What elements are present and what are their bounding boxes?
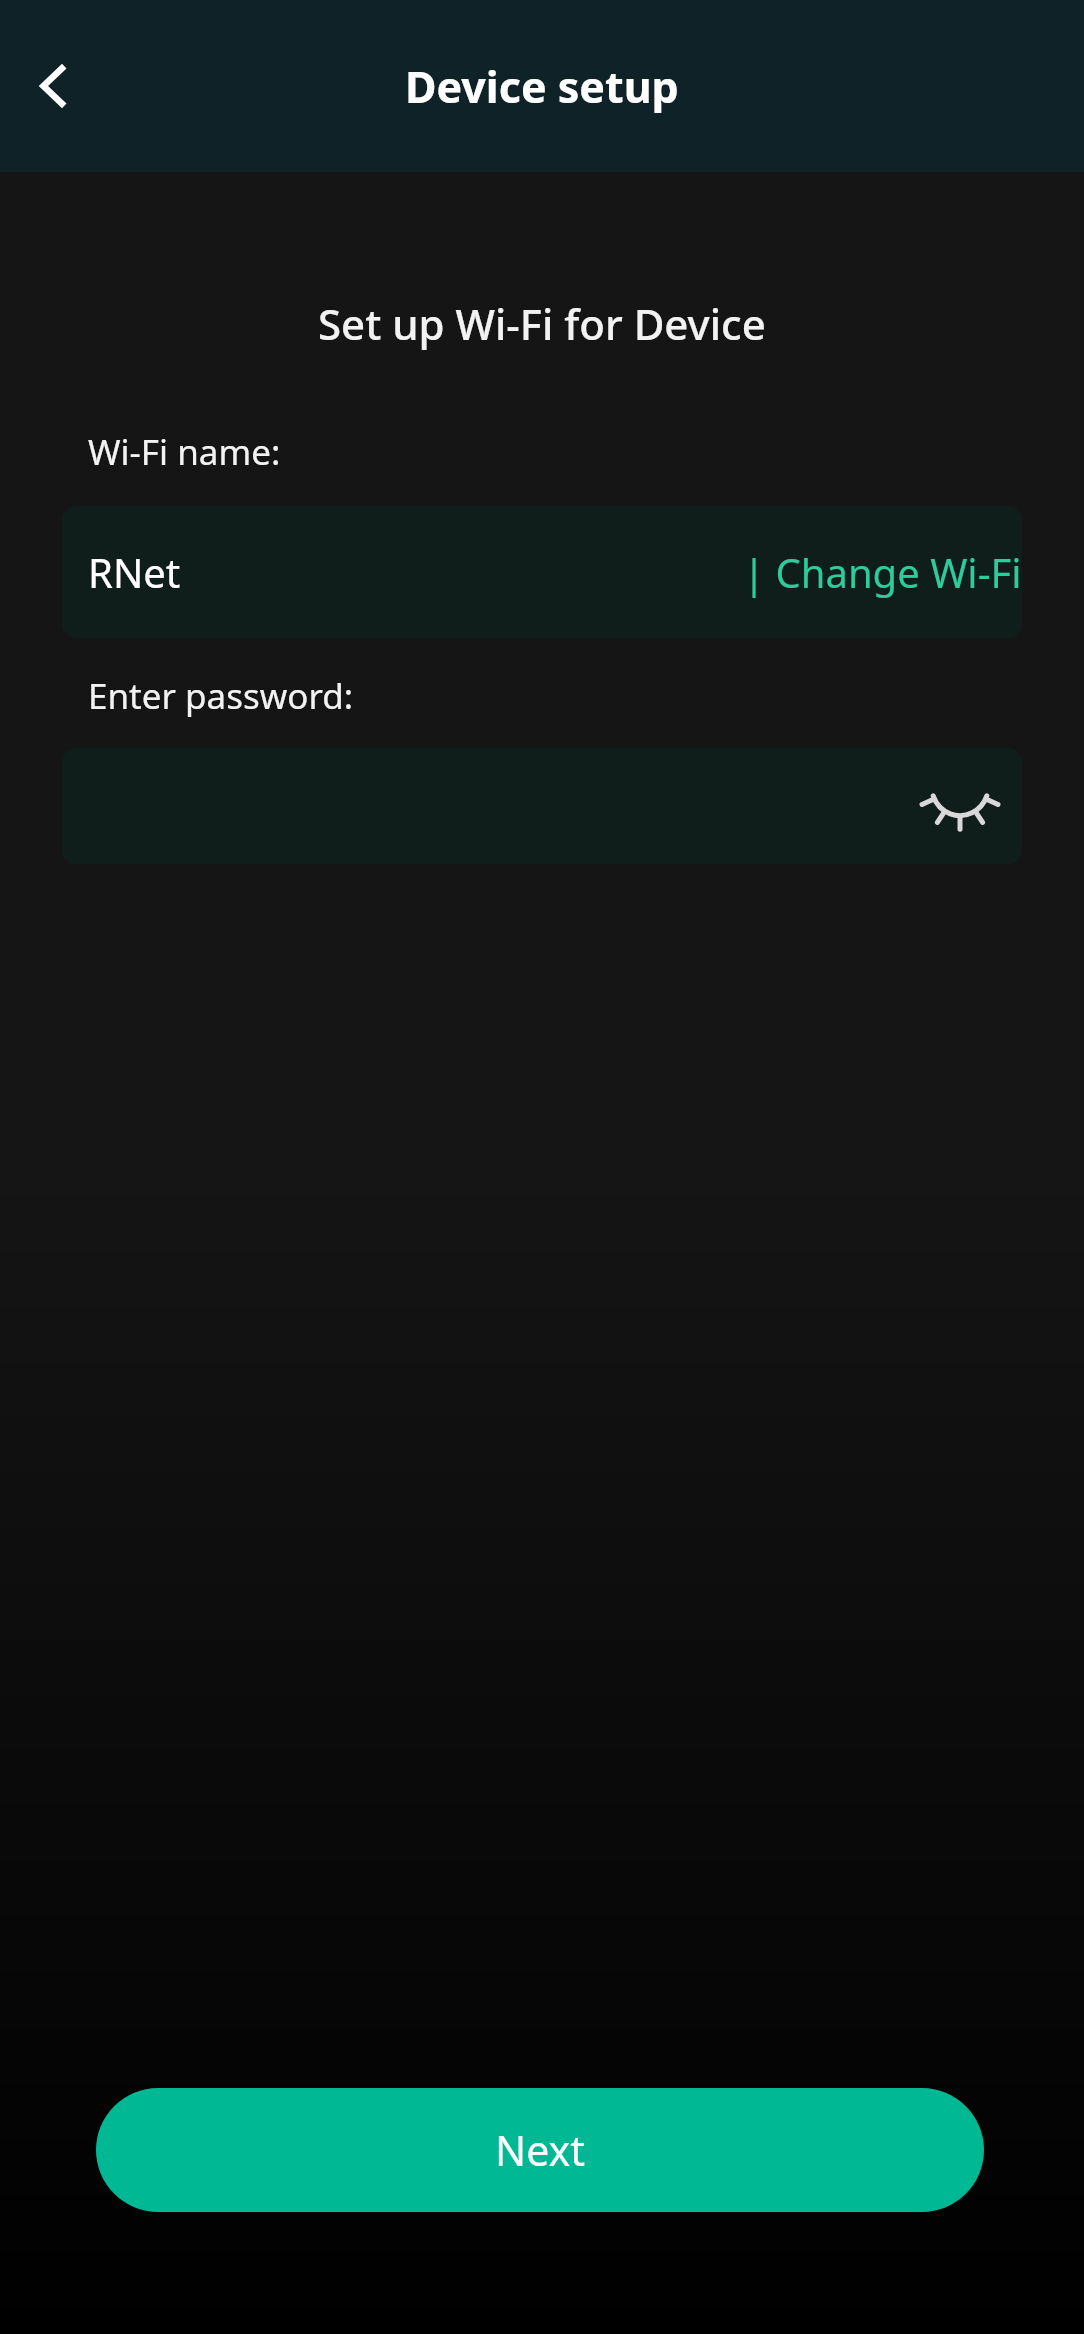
staticText: Set up Wi-Fi for Device	[318, 295, 766, 352]
staticText: Wi-Fi name:	[88, 428, 281, 476]
staticText: RNet	[88, 545, 181, 599]
button[interactable]: Back	[10, 42, 98, 130]
staticText: Device setup	[405, 57, 679, 116]
button[interactable]: Next	[96, 2088, 984, 2212]
button[interactable]: Show password	[922, 768, 998, 844]
staticText: Next	[495, 2122, 585, 2178]
button[interactable]: | Change Wi-Fi	[743, 545, 1022, 599]
button[interactable]: Show password	[62, 748, 1022, 864]
button[interactable]: RNet	[62, 506, 1022, 638]
staticText: Enter password:	[88, 672, 354, 720]
